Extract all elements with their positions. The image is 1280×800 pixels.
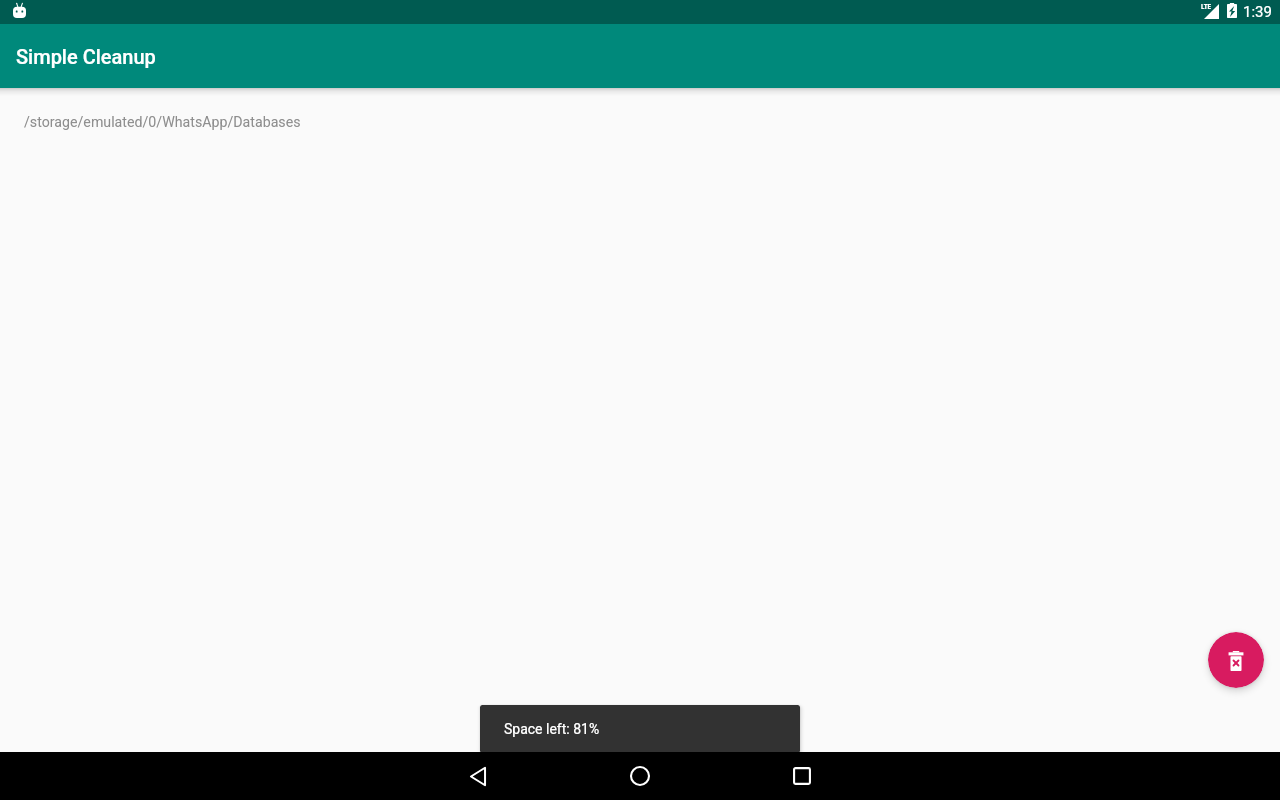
button[interactable]: Clean (1208, 632, 1264, 688)
button[interactable]: Back (442, 752, 514, 800)
staticText: Simple Cleanup (16, 45, 156, 68)
staticText: 1:39 (1243, 3, 1272, 21)
button[interactable]: Home (604, 752, 676, 800)
staticText: /storage/emulated/0/WhatsApp/Databases (24, 114, 301, 131)
button[interactable]: Recents (766, 752, 838, 800)
staticText: LTE (1201, 2, 1212, 10)
staticText: Space left: 81% (504, 721, 600, 737)
